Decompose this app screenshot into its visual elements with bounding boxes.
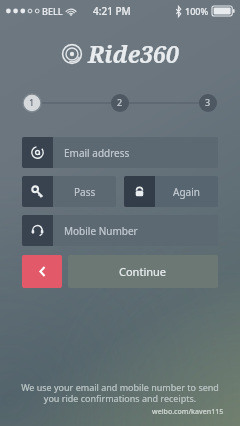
button[interactable]: Back [22,255,62,288]
button[interactable]: Password [22,176,116,207]
button[interactable]: 2 [111,93,129,111]
staticText: Ride360 [88,38,179,69]
button[interactable]: Confirm password [124,176,218,207]
button[interactable]: 3 [199,93,217,111]
staticText: 4:21 PM [93,4,131,18]
staticText: Email address [64,146,130,160]
staticText: We use your email and mobile number to s… [21,381,219,405]
staticText: weibo.com/kaven115 [152,407,224,417]
staticText: 1 [29,96,35,108]
button[interactable]: Continue [68,255,218,288]
staticText: Pass [74,185,96,199]
staticText: 2 [117,96,123,108]
staticText: 100% [185,5,209,17]
staticText: 3 [205,96,211,108]
staticText: Continue [119,264,167,279]
staticText: Again [173,185,200,199]
button[interactable]: Email [22,137,218,168]
button[interactable]: Mobile number [22,215,218,246]
staticText: BELL [42,5,63,17]
staticText: Mobile Number [64,224,138,238]
button[interactable]: 1 [23,93,41,111]
